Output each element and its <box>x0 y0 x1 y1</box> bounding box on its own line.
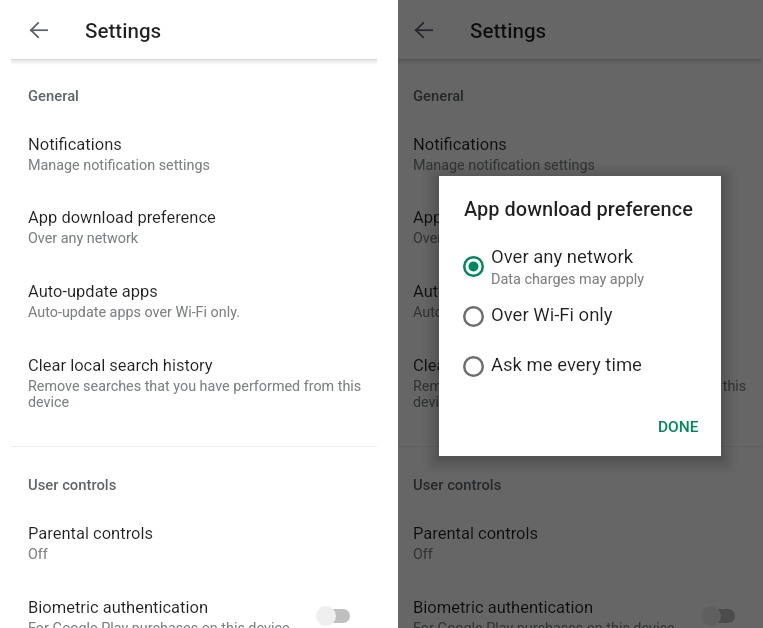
button[interactable]: Auto-update apps <box>0 268 390 338</box>
staticText: Notifications <box>28 135 122 154</box>
staticText: Settings <box>470 19 547 43</box>
staticText: Settings <box>85 19 162 43</box>
staticText: Parental controls <box>413 524 538 543</box>
staticText: Clear local search history <box>28 356 213 375</box>
staticText: General <box>413 87 464 104</box>
button[interactable]: Toggle biometric authentication <box>306 597 360 628</box>
staticText: Manage notification settings <box>413 157 595 174</box>
staticText: General <box>28 87 79 104</box>
staticText: Auto-update apps over Wi-Fi only. <box>413 304 625 321</box>
staticText: Notifications <box>413 135 507 154</box>
staticText: Clear local search history <box>413 356 598 375</box>
staticText: Parental controls <box>28 524 153 543</box>
staticText: User controls <box>28 476 117 493</box>
staticText: DONE <box>658 418 699 436</box>
staticText: Auto-update apps <box>413 282 543 301</box>
button[interactable]: Clear local search history <box>0 342 390 412</box>
button[interactable]: Over Wi-Fi only <box>455 292 709 340</box>
staticText: For Google Play purchases on this device <box>413 620 675 628</box>
staticText: Data charges may apply <box>491 271 645 288</box>
button[interactable]: Parental controls <box>398 510 750 580</box>
staticText: App download preference <box>413 208 601 227</box>
staticText: Over any network <box>491 246 634 268</box>
staticText: Over any network <box>28 230 139 247</box>
button[interactable]: Clear local search history <box>398 342 750 412</box>
staticText: Over Wi-Fi only <box>491 304 613 326</box>
staticText: Off <box>28 546 48 563</box>
staticText: User controls <box>413 476 502 493</box>
staticText: Auto-update apps <box>28 282 158 301</box>
button[interactable]: DONE <box>641 410 711 444</box>
staticText: Off <box>413 546 433 563</box>
button[interactable]: App download preference <box>398 194 750 264</box>
staticText: Remove searches that you have performed … <box>413 378 758 411</box>
staticText: App download preference <box>464 197 693 220</box>
staticText: For Google Play purchases on this device <box>28 620 290 628</box>
staticText: Remove searches that you have performed … <box>28 378 373 411</box>
button[interactable]: Ask me every time <box>455 342 709 390</box>
staticText: App download preference <box>28 208 216 227</box>
staticText: Auto-update apps over Wi-Fi only. <box>28 304 240 321</box>
button[interactable]: Toggle biometric authentication <box>691 597 745 628</box>
button[interactable]: Back <box>25 16 53 44</box>
staticText: Biometric authentication <box>28 598 209 617</box>
button[interactable]: Back <box>410 16 438 44</box>
staticText: Biometric authentication <box>413 598 594 617</box>
button[interactable]: Over any network <box>455 242 709 290</box>
button[interactable]: Biometric authentication <box>0 584 390 628</box>
button[interactable]: Notifications <box>398 121 750 191</box>
staticText: Ask me every time <box>491 354 642 376</box>
staticText: Manage notification settings <box>28 157 210 174</box>
button[interactable]: Biometric authentication <box>398 584 750 628</box>
button[interactable]: Auto-update apps <box>398 268 750 338</box>
button[interactable]: App download preference <box>0 194 390 264</box>
button[interactable]: Notifications <box>0 121 390 191</box>
staticText: Over any network <box>413 230 524 247</box>
button[interactable]: Parental controls <box>0 510 390 580</box>
